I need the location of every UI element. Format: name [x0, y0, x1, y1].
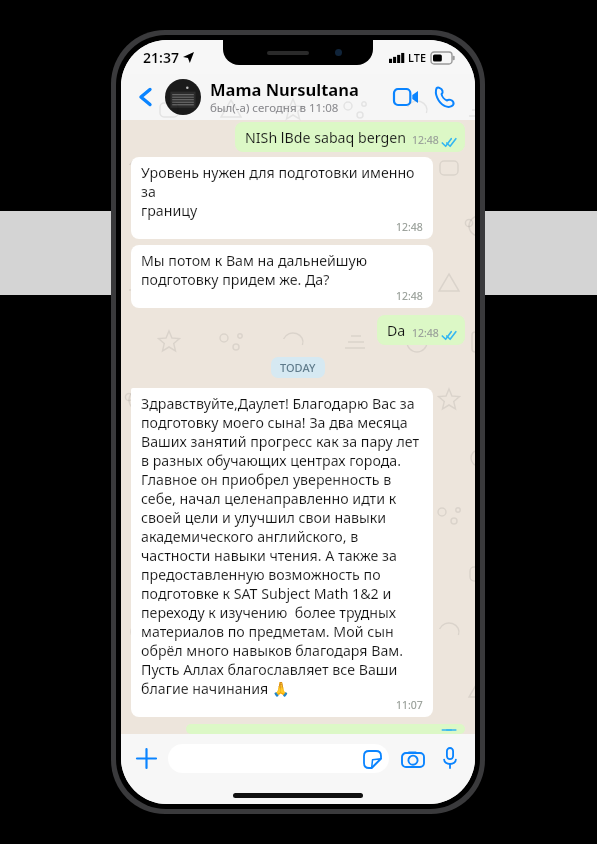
staticText: был(-а) сегодня в 11:08	[210, 100, 339, 116]
button[interactable]: Voice call	[427, 80, 461, 114]
staticText: 12:48	[412, 133, 439, 147]
button[interactable]	[165, 79, 201, 115]
button[interactable]: Da	[377, 315, 465, 345]
button[interactable]: Мы потом к Вам на дальнейшую подготовку …	[131, 245, 433, 308]
staticText: 21:37	[143, 48, 179, 67]
staticText: 12:48	[412, 326, 439, 340]
button[interactable]: Camera	[398, 743, 428, 773]
staticText: 12:48	[396, 289, 423, 303]
button[interactable]: Sticker	[168, 744, 389, 773]
staticText: Мы потом к Вам на дальнейшую подготовку …	[141, 251, 368, 289]
button[interactable]: Уровень нужен для подготовки именно за г…	[131, 157, 433, 239]
button[interactable]: NISh lBde sabaq bergen	[235, 122, 465, 152]
button[interactable]: Mama Nursultana	[210, 78, 389, 116]
staticText: 12:48	[396, 220, 423, 234]
button[interactable]: Добрый день! Большое спасибо за тёплые с…	[186, 724, 465, 734]
staticText: NISh lBde sabaq bergen	[245, 128, 406, 147]
staticText: 11:07	[396, 698, 423, 712]
button[interactable]: Здравствуйте,Даулет! Благодарю Вас за по…	[131, 388, 433, 717]
button[interactable]: Video call	[389, 80, 423, 114]
button[interactable]: Back	[131, 82, 161, 112]
button[interactable]: Voice message	[435, 743, 465, 773]
staticText: Da	[387, 321, 406, 340]
staticText: Mama Nursultana	[210, 78, 359, 100]
button[interactable]: Attach	[131, 743, 161, 773]
staticText: TODAY	[280, 360, 316, 375]
staticText: Здравствуйте,Даулет! Благодарю Вас за по…	[141, 394, 420, 698]
staticText: Уровень нужен для подготовки именно за г…	[141, 163, 423, 220]
staticText: LTE	[408, 50, 427, 65]
button[interactable]: Sticker	[363, 750, 381, 768]
